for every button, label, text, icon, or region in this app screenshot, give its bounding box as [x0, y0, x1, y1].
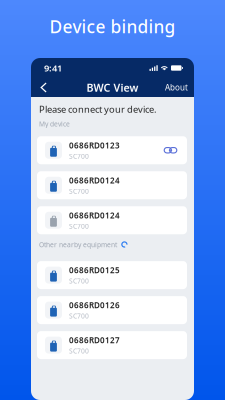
button[interactable]: 0686RD0126 — [37, 296, 187, 324]
staticText: Other nearby equipment — [39, 240, 117, 249]
staticText: My device — [39, 119, 70, 128]
staticText: 0686RD0123 — [69, 140, 120, 151]
staticText: 0686RD0127 — [69, 335, 120, 345]
button[interactable]: 0686RD0123 — [37, 136, 187, 164]
staticText: Device binding — [49, 15, 175, 38]
staticText: 0686RD0124 — [69, 175, 120, 186]
staticText: Please connect your device. — [39, 103, 157, 115]
staticText: 0686RD0126 — [69, 300, 120, 310]
button[interactable]: 0686RD0124 — [37, 206, 187, 234]
staticText: 0686RD0124 — [69, 210, 120, 221]
staticText: BWC View — [86, 80, 138, 95]
staticText: SC700 — [69, 152, 89, 160]
button[interactable]: Back — [31, 78, 56, 97]
staticText: SC700 — [69, 222, 89, 230]
staticText: 9:41 — [44, 62, 62, 74]
button[interactable]: 0686RD0124 — [37, 171, 187, 199]
staticText: SC700 — [69, 187, 89, 195]
staticText: SC700 — [69, 276, 89, 285]
button[interactable]: 0686RD0125 — [37, 261, 187, 289]
staticText: SC700 — [69, 311, 89, 320]
staticText: SC700 — [69, 346, 89, 355]
staticText: About — [165, 82, 188, 93]
staticText: 0686RD0125 — [69, 265, 120, 275]
button[interactable]: About — [165, 78, 194, 97]
button[interactable]: 0686RD0127 — [37, 331, 187, 359]
